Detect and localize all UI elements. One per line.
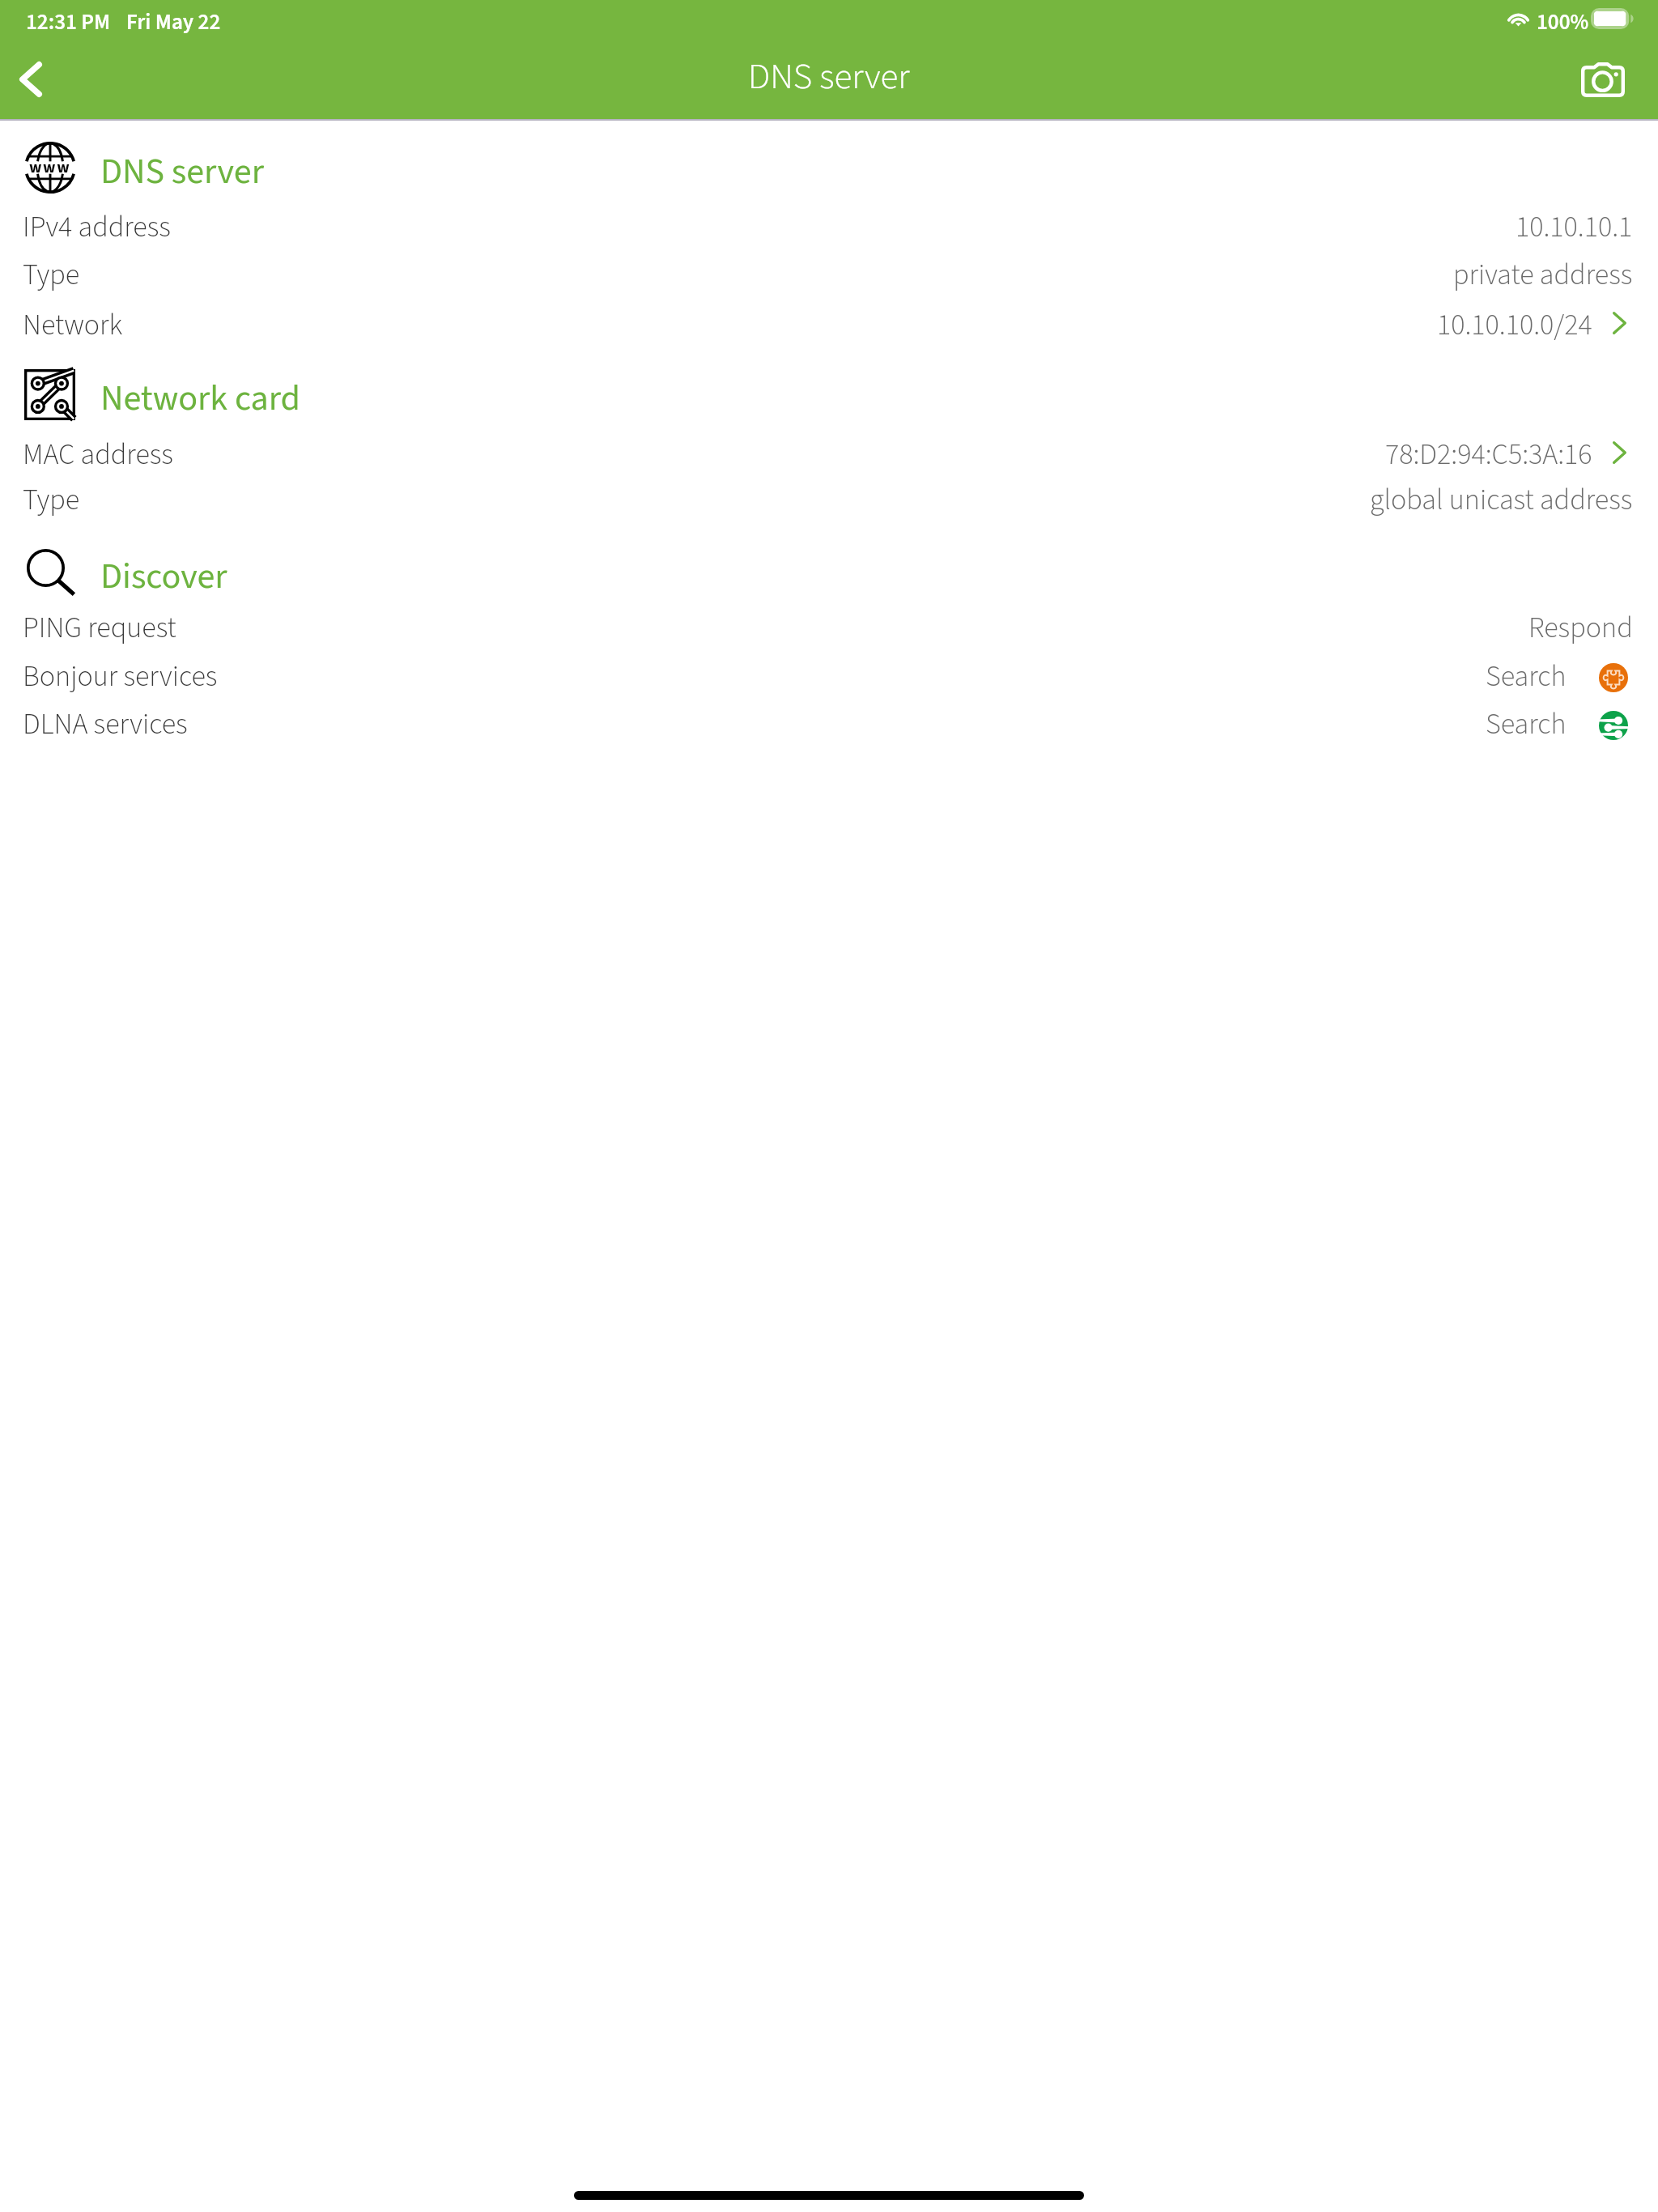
button[interactable]: PING request (0, 602, 1658, 647)
staticText: Bonjour services (23, 656, 218, 697)
staticText: Respond (1528, 607, 1633, 649)
staticText: IPv4 address (23, 206, 171, 248)
staticText: DNS server (748, 51, 910, 103)
staticText: 10.10.10.0/24 (1437, 304, 1592, 346)
button[interactable]: MAC address (0, 428, 1658, 474)
staticText: private address (1453, 254, 1633, 296)
button[interactable]: Type (0, 474, 1658, 519)
staticText: Type (23, 254, 80, 296)
staticText: PING request (23, 607, 176, 649)
staticText: global unicast address (1370, 479, 1633, 521)
staticText: www (29, 156, 71, 179)
staticText: Network (23, 304, 123, 346)
staticText: 100% (1537, 6, 1589, 37)
staticText: Search (1486, 704, 1567, 745)
staticText: Network card (100, 373, 300, 424)
staticText: Discover (100, 551, 227, 602)
staticText: Search (1486, 656, 1567, 697)
staticText: 78:D2:94:C5:3A:16 (1385, 434, 1592, 475)
staticText: 10.10.10.1 (1516, 206, 1633, 248)
button[interactable]: Network (0, 299, 1658, 344)
button[interactable]: DLNA services (0, 698, 1658, 743)
button[interactable]: Type (0, 249, 1658, 294)
staticText: DLNA services (23, 704, 188, 745)
button[interactable]: IPv4 address (0, 201, 1658, 246)
staticText: Type (23, 479, 80, 521)
staticText: DNS server (100, 147, 264, 198)
button[interactable]: Bonjour services (0, 650, 1658, 696)
staticText: MAC address (23, 434, 173, 475)
staticText: 12:31 PM (26, 6, 111, 37)
button[interactable]: Camera (1561, 45, 1642, 113)
staticText: Fri May 22 (126, 6, 221, 37)
button[interactable]: Back (0, 45, 81, 113)
